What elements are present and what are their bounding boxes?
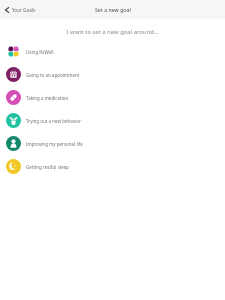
staticText: Taking a medication <box>26 95 69 101</box>
staticText: I want to set a new goal around... <box>0 28 225 36</box>
button[interactable]: Taking a medication <box>0 86 225 109</box>
button[interactable]: Using RxWell <box>0 40 225 63</box>
staticText: Set a new goal <box>95 6 131 13</box>
button[interactable]: Trying out a new behavior <box>0 109 225 132</box>
staticText: Using RxWell <box>26 49 54 55</box>
button[interactable]: Back to Your Goals <box>0 4 39 16</box>
staticText: Trying out a new behavior <box>26 118 81 124</box>
staticText: Your Goals <box>12 7 36 13</box>
staticText: Getting restful sleep <box>26 164 69 170</box>
staticText: Going to an appointment <box>26 72 80 78</box>
button[interactable]: Getting restful sleep <box>0 155 225 178</box>
button[interactable]: Going to an appointment <box>0 63 225 86</box>
staticText: Improving my personal life <box>26 141 83 147</box>
button[interactable]: Improving my personal life <box>0 132 225 155</box>
other: Back to Your Goals <box>4 7 10 13</box>
